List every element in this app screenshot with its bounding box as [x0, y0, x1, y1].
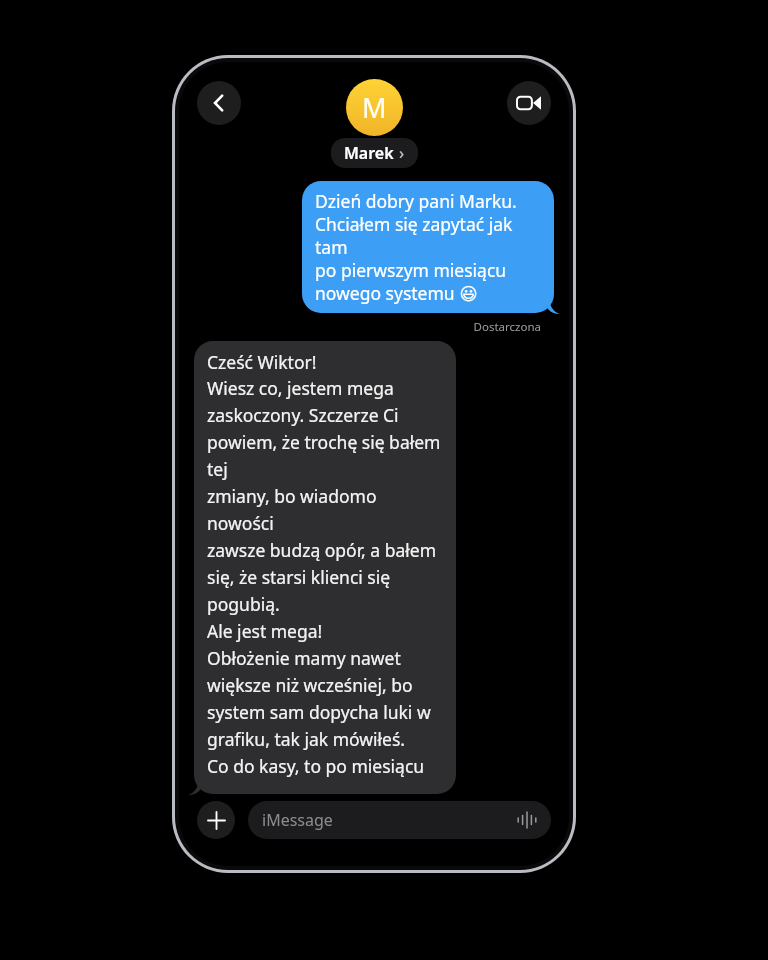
button[interactable]: Video call — [507, 81, 551, 125]
staticText: Marek — [344, 142, 394, 164]
button[interactable]: Marek — [331, 138, 418, 168]
staticText: iMessage — [262, 809, 517, 831]
button[interactable]: Cześć Wiktor! Wiesz co, jestem mega zask… — [194, 341, 456, 794]
staticText: Dostarczona — [473, 319, 541, 335]
staticText: M — [362, 89, 387, 126]
button[interactable]: Dzień dobry pani Marku. Chciałem się zap… — [302, 181, 554, 313]
staticText: › — [399, 142, 405, 164]
staticText: Cześć Wiktor! Wiesz co, jestem mega zask… — [207, 350, 443, 785]
staticText: Dzień dobry pani Marku. Chciałem się zap… — [315, 189, 541, 305]
button[interactable]: iMessage — [248, 801, 551, 839]
button[interactable]: Add attachment — [197, 801, 235, 839]
button[interactable]: Back — [197, 81, 241, 125]
button[interactable]: M — [346, 79, 403, 136]
